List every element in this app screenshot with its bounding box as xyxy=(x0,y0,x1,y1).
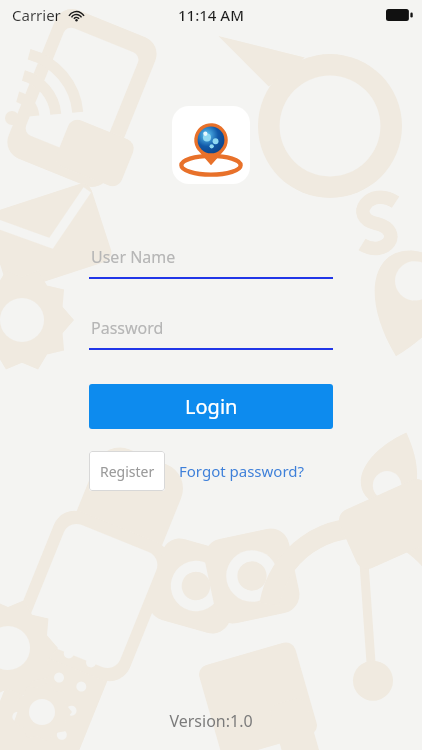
staticText: User Name xyxy=(91,246,176,268)
button[interactable]: Password xyxy=(89,317,333,350)
staticText: Carrier xyxy=(12,5,61,25)
staticText: Login xyxy=(185,393,238,420)
staticText: Password xyxy=(91,317,164,339)
staticText: Forgot password? xyxy=(179,461,305,481)
staticText: Version:1.0 xyxy=(0,710,422,732)
staticText: 11:14 AM xyxy=(178,5,244,25)
button[interactable]: Login xyxy=(89,384,333,429)
staticText: Register xyxy=(100,462,155,481)
button[interactable]: Forgot password? xyxy=(179,453,305,489)
button[interactable]: User Name xyxy=(89,246,333,279)
button[interactable]: Register xyxy=(89,451,165,491)
